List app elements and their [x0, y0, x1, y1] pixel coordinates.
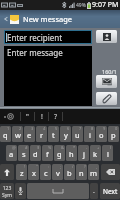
button[interactable]: z — [16, 164, 27, 180]
button[interactable]: c — [40, 164, 51, 180]
button[interactable]: p — [108, 126, 119, 142]
staticText: o — [99, 130, 104, 140]
staticText: z — [20, 168, 24, 178]
staticText: 123 Sym — [2, 185, 12, 198]
button[interactable]: q — [0, 126, 11, 142]
staticText: + — [97, 145, 100, 150]
staticText: a — [9, 149, 14, 159]
button[interactable]: Insert smiley — [96, 75, 117, 88]
button[interactable]: r — [36, 126, 47, 142]
button[interactable]: Enter recipient — [4, 30, 92, 44]
button[interactable]: t — [48, 126, 59, 142]
staticText: r — [40, 130, 44, 140]
staticText: @ — [12, 145, 16, 150]
staticText: ! — [24, 164, 26, 169]
staticText: ? — [54, 112, 58, 122]
staticText: " — [36, 164, 38, 169]
staticText: p — [111, 130, 116, 140]
staticText: y — [64, 130, 68, 140]
staticText: Next — [103, 187, 118, 196]
button[interactable]: Keyboard settings — [6, 109, 15, 124]
button[interactable]: x — [28, 164, 39, 180]
staticText: 49% — [76, 2, 86, 9]
staticText: t — [52, 130, 55, 140]
button[interactable]: n — [76, 164, 87, 180]
staticText: 4 — [43, 126, 46, 131]
button[interactable]: i — [84, 126, 95, 142]
staticText: : — [48, 164, 50, 169]
staticText: - — [86, 145, 88, 150]
staticText: q — [3, 130, 8, 140]
button[interactable]: v — [52, 164, 63, 180]
button[interactable]: ! — [35, 109, 48, 124]
button[interactable]: g — [54, 145, 65, 161]
staticText: w — [15, 130, 21, 140]
staticText: l — [107, 149, 109, 159]
staticText: , — [96, 164, 98, 169]
button[interactable]: j — [78, 145, 89, 161]
staticText: v — [56, 168, 60, 178]
button[interactable]: k — [90, 145, 101, 161]
button[interactable]: . — [90, 183, 98, 199]
staticText: " — [26, 112, 29, 122]
staticText: 7 — [79, 126, 82, 131]
button[interactable]: Backspace — [101, 164, 120, 180]
button[interactable]: y — [60, 126, 71, 142]
button[interactable]: Back — [1, 10, 10, 28]
staticText: ! — [41, 112, 43, 122]
staticText: 6 — [67, 126, 70, 131]
button[interactable]: Symbols — [0, 183, 14, 199]
staticText: 0 — [115, 126, 118, 131]
button[interactable]: w — [12, 126, 23, 142]
button[interactable]: Next — [100, 183, 120, 199]
button[interactable]: l — [102, 145, 113, 161]
staticText: 5 — [55, 126, 58, 131]
button[interactable]: Select contacts — [96, 30, 117, 43]
button[interactable]: m — [88, 164, 99, 180]
button[interactable]: a — [6, 145, 17, 161]
staticText: Enter recipient — [7, 32, 63, 43]
button[interactable]: Attach — [96, 92, 117, 105]
staticText: * — [73, 145, 76, 150]
staticText: % — [48, 145, 52, 150]
staticText: s — [22, 149, 26, 159]
staticText: ? — [84, 164, 86, 169]
staticText: c — [44, 168, 48, 178]
button[interactable]: Voice input — [15, 183, 26, 199]
staticText: b — [67, 168, 72, 178]
staticText: $ — [37, 145, 40, 150]
button[interactable]: Space — [27, 183, 89, 199]
button[interactable]: " — [21, 109, 34, 124]
button[interactable]: Enter message — [4, 46, 92, 106]
staticText: f — [46, 149, 49, 159]
staticText: 8 — [91, 126, 94, 131]
staticText: d — [33, 149, 38, 159]
staticText: i — [89, 130, 91, 140]
button[interactable]: h — [66, 145, 77, 161]
button[interactable]: f — [42, 145, 53, 161]
staticText: 160/1 — [102, 68, 117, 75]
staticText: g — [57, 149, 62, 159]
button[interactable]: e — [24, 126, 35, 142]
button[interactable]: o — [96, 126, 107, 142]
button[interactable]: s — [18, 145, 29, 161]
staticText: / — [72, 164, 74, 169]
staticText: k — [93, 149, 98, 159]
staticText: Enter message — [7, 47, 63, 58]
staticText: # — [25, 145, 28, 150]
button[interactable]: ? — [49, 109, 62, 124]
staticText: m — [90, 168, 98, 178]
staticText: . — [93, 186, 95, 196]
staticText: New message — [23, 14, 73, 24]
button[interactable]: d — [30, 145, 41, 161]
staticText: n — [79, 168, 84, 178]
staticText: 3 — [31, 126, 34, 131]
staticText: e — [27, 130, 32, 140]
staticText: 9 — [103, 126, 106, 131]
staticText: 2 — [19, 126, 22, 131]
button[interactable]: Shift — [0, 164, 14, 180]
staticText: ; — [60, 164, 62, 169]
button[interactable]: u — [72, 126, 83, 142]
button[interactable]: b — [64, 164, 75, 180]
staticText: ( — [110, 145, 112, 150]
